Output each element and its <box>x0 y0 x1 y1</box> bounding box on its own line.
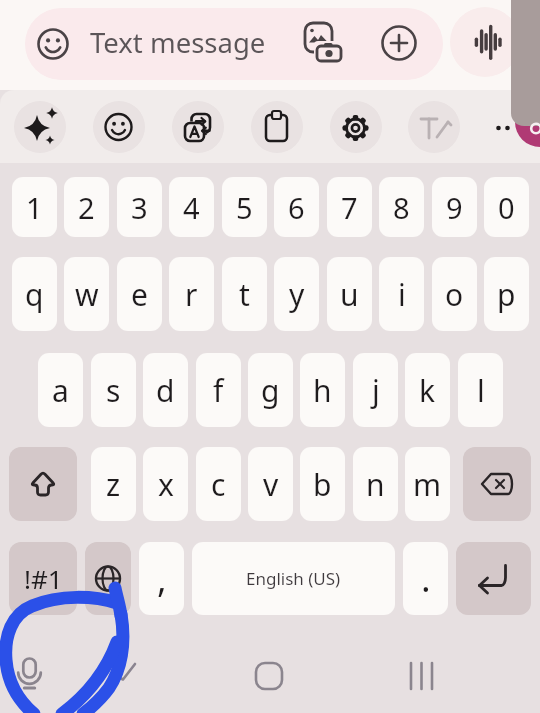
staticText: r <box>185 274 198 315</box>
staticText: j <box>372 370 380 411</box>
button[interactable]: k <box>405 353 450 427</box>
button[interactable] <box>399 654 443 698</box>
button[interactable] <box>456 542 531 615</box>
staticText: m <box>413 464 442 505</box>
button[interactable] <box>85 542 131 615</box>
button[interactable]: e <box>117 257 162 331</box>
button[interactable]: a <box>38 353 83 427</box>
staticText: u <box>340 274 359 315</box>
button[interactable]: x <box>143 447 188 521</box>
staticText: Text message <box>90 24 266 61</box>
button[interactable] <box>450 7 520 77</box>
button[interactable]: l <box>458 353 503 427</box>
staticText: v <box>263 464 279 505</box>
staticText: !#1 <box>24 561 63 596</box>
button[interactable] <box>172 101 224 153</box>
button[interactable]: !#1 <box>9 542 77 615</box>
staticText: b <box>313 464 332 505</box>
staticText: s <box>106 370 121 411</box>
button[interactable] <box>36 26 70 60</box>
button[interactable]: n <box>353 447 398 521</box>
button[interactable]: . <box>403 542 448 615</box>
button[interactable] <box>25 8 443 80</box>
button[interactable] <box>408 101 460 153</box>
staticText: o <box>445 274 464 315</box>
staticText: p <box>497 274 516 315</box>
button[interactable] <box>8 653 53 698</box>
button[interactable] <box>488 112 520 144</box>
staticText: 3 <box>131 188 148 227</box>
staticText: i <box>398 274 406 315</box>
button[interactable] <box>382 25 416 59</box>
button[interactable]: m <box>405 447 450 521</box>
staticText: n <box>366 464 385 505</box>
button[interactable]: t <box>222 257 267 331</box>
staticText: k <box>419 370 436 411</box>
staticText: , <box>157 554 167 603</box>
button[interactable]: q <box>12 257 57 331</box>
button[interactable]: c <box>196 447 241 521</box>
staticText: l <box>477 370 485 411</box>
button[interactable] <box>330 101 382 153</box>
button[interactable]: w <box>64 257 109 331</box>
button[interactable]: 4 <box>169 177 214 237</box>
button[interactable] <box>247 654 291 698</box>
button[interactable]: y <box>274 257 319 331</box>
button[interactable] <box>463 447 531 521</box>
button[interactable]: 5 <box>222 177 267 237</box>
staticText: e <box>131 274 148 315</box>
button[interactable]: b <box>300 447 345 521</box>
staticText: 1 <box>26 188 43 227</box>
button[interactable]: 0 <box>484 177 529 237</box>
staticText: English (US) <box>246 567 341 590</box>
button[interactable]: English (US) <box>192 542 395 615</box>
button[interactable] <box>302 20 350 64</box>
button[interactable]: z <box>91 447 136 521</box>
staticText: 0 <box>498 188 515 227</box>
button[interactable]: 8 <box>379 177 424 237</box>
button[interactable] <box>93 101 145 153</box>
button[interactable]: 1 <box>12 177 57 237</box>
staticText: h <box>313 370 332 411</box>
button[interactable]: h <box>300 353 345 427</box>
button[interactable]: 7 <box>327 177 372 237</box>
button[interactable] <box>251 101 303 153</box>
button[interactable]: 2 <box>64 177 109 237</box>
button[interactable]: 9 <box>432 177 477 237</box>
staticText: w <box>75 274 99 315</box>
staticText: 5 <box>236 188 253 227</box>
button[interactable]: o <box>432 257 477 331</box>
staticText: 4 <box>183 188 200 227</box>
button[interactable]: j <box>353 353 398 427</box>
button[interactable]: r <box>169 257 214 331</box>
staticText: c <box>211 464 226 505</box>
staticText: f <box>213 370 224 411</box>
staticText: 6 <box>288 188 305 227</box>
staticText: y <box>289 274 305 315</box>
button[interactable]: 6 <box>274 177 319 237</box>
staticText: 9 <box>446 188 463 227</box>
staticText: x <box>158 464 174 505</box>
staticText: 7 <box>341 188 358 227</box>
button[interactable]: v <box>248 447 293 521</box>
staticText: 2 <box>78 188 95 227</box>
button[interactable]: p <box>484 257 529 331</box>
button[interactable]: i <box>379 257 424 331</box>
staticText: 8 <box>393 188 410 227</box>
staticText: q <box>25 274 44 315</box>
button[interactable]: u <box>327 257 372 331</box>
staticText: g <box>261 370 280 411</box>
button[interactable]: , <box>139 542 184 615</box>
button[interactable]: s <box>91 353 136 427</box>
button[interactable]: d <box>143 353 188 427</box>
button[interactable]: f <box>196 353 241 427</box>
staticText: . <box>421 554 431 603</box>
staticText: t <box>239 274 250 315</box>
button[interactable]: g <box>248 353 293 427</box>
staticText: z <box>106 464 121 505</box>
button[interactable] <box>9 447 77 521</box>
staticText: d <box>156 370 175 411</box>
button[interactable]: 3 <box>117 177 162 237</box>
staticText: a <box>52 370 69 411</box>
button[interactable] <box>14 101 66 153</box>
